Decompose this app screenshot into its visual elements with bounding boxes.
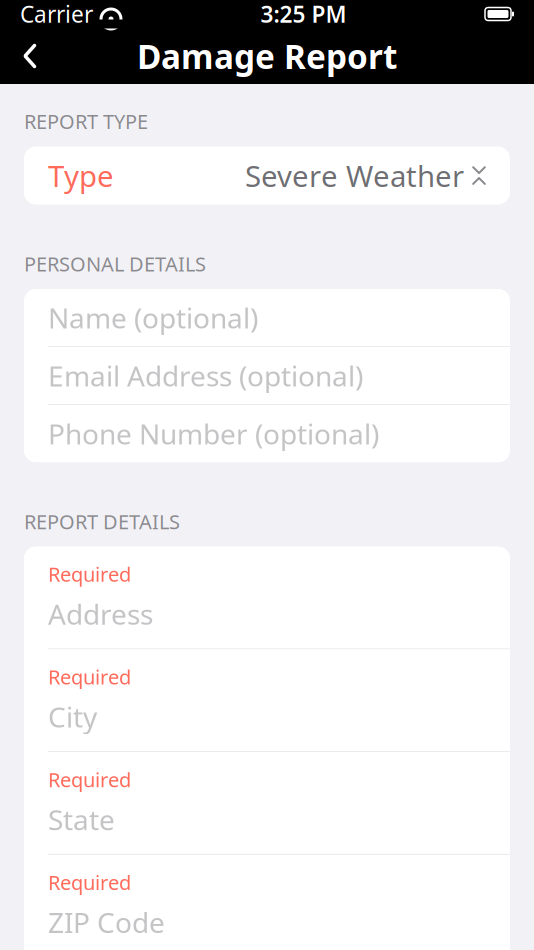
button[interactable]: Required bbox=[24, 649, 510, 751]
staticText: Severe Weather bbox=[245, 156, 464, 195]
staticText: REPORT DETAILS bbox=[24, 508, 180, 535]
staticText: Required bbox=[48, 869, 131, 895]
button[interactable]: Phone Number (optional) bbox=[24, 405, 510, 462]
button[interactable]: Name (optional) bbox=[24, 289, 510, 346]
staticText: Email Address (optional) bbox=[48, 357, 363, 394]
staticText: Required bbox=[48, 561, 131, 587]
staticText: ZIP Code bbox=[48, 903, 165, 941]
button[interactable]: Back bbox=[8, 34, 52, 78]
staticText: Name (optional) bbox=[48, 299, 258, 336]
staticText: City bbox=[48, 698, 97, 735]
button[interactable]: Type bbox=[24, 147, 510, 205]
staticText: PERSONAL DETAILS bbox=[24, 251, 206, 277]
staticText: Required bbox=[48, 663, 131, 690]
staticText: Phone Number (optional) bbox=[48, 415, 379, 452]
staticText: Damage Report bbox=[137, 34, 397, 78]
button[interactable]: Email Address (optional) bbox=[24, 347, 510, 404]
staticText: 3:25 PM bbox=[260, 0, 346, 29]
button[interactable]: Required bbox=[24, 547, 510, 648]
staticText: Type bbox=[48, 156, 114, 195]
button[interactable]: Required bbox=[24, 855, 510, 950]
staticText: Required bbox=[48, 766, 131, 793]
staticText: REPORT TYPE bbox=[24, 108, 148, 135]
staticText: Address bbox=[48, 595, 153, 632]
staticText: Carrier bbox=[20, 0, 93, 29]
staticText: State bbox=[48, 801, 115, 838]
button[interactable]: Required bbox=[24, 752, 510, 854]
